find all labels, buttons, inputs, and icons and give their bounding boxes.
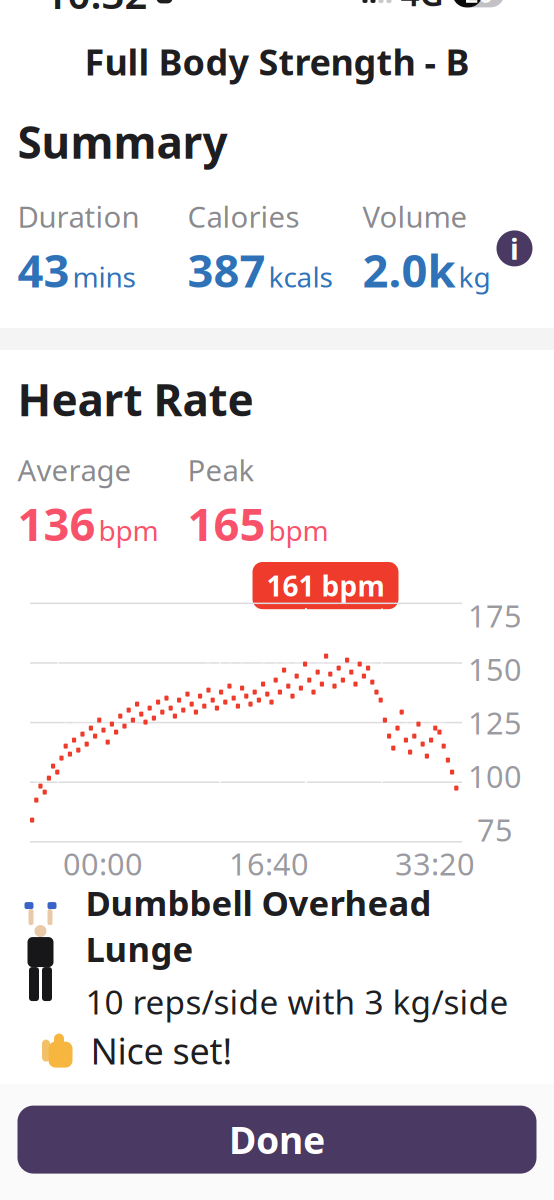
staticText: mins <box>72 258 135 295</box>
staticText: Average <box>17 450 131 489</box>
staticText: kg <box>458 258 490 295</box>
staticText: bpm <box>268 512 328 549</box>
staticText: 2.0k <box>362 240 455 300</box>
staticText: 136 <box>17 493 95 554</box>
staticText: 4G <box>400 0 443 16</box>
staticText: 100 <box>468 756 522 796</box>
staticText: 43 <box>17 240 69 300</box>
staticText: Volume <box>362 197 467 236</box>
staticText: 175 <box>468 595 522 636</box>
staticText: Calories <box>187 197 299 236</box>
staticText: 150 <box>468 649 522 689</box>
staticText: 10 reps/side with 3 kg/side <box>85 979 508 1024</box>
staticText: 161 bpm <box>266 567 384 604</box>
staticText: 75 <box>477 809 513 850</box>
staticText: Nice set! <box>90 1027 232 1074</box>
staticText: Summary <box>17 112 227 171</box>
button[interactable]: Info about volume <box>492 226 536 270</box>
staticText: Peak <box>187 450 254 489</box>
staticText: Dumbbell Overhead Lunge <box>85 879 431 971</box>
staticText: 33:20 <box>395 843 475 884</box>
staticText: Done <box>229 1115 325 1164</box>
staticText: Duration <box>17 197 139 236</box>
staticText: i <box>510 229 519 268</box>
button[interactable]: Dumbbell Overhead Lunge <box>0 884 554 1004</box>
staticText: bpm <box>98 512 158 549</box>
staticText: 10:32 <box>44 0 147 20</box>
staticText: Heart Rate <box>17 370 253 428</box>
staticText: 125 <box>468 702 522 743</box>
staticText: 165 <box>187 493 265 554</box>
staticText: 00:00 <box>63 843 143 884</box>
staticText: 16:40 <box>229 843 309 884</box>
button[interactable]: Done <box>17 1106 536 1174</box>
staticText: 387 <box>187 240 265 300</box>
staticText: 26 <box>464 0 492 9</box>
staticText: Full Body Strength - B <box>84 37 469 85</box>
staticText: kcals <box>268 258 332 295</box>
